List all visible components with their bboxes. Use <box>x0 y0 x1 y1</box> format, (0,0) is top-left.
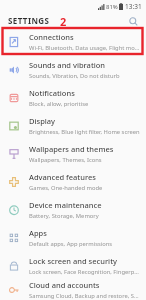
button[interactable]: Advanced features <box>0 168 146 196</box>
button[interactable]: Wallpapers and themes <box>0 140 146 168</box>
staticText: Advanced features <box>29 172 96 182</box>
button[interactable]: Cloud and accounts <box>0 280 146 300</box>
staticText: Connections <box>29 32 74 42</box>
staticText: Games, One-handed mode <box>29 184 103 192</box>
staticText: Sounds, Vibration, Do not disturb <box>29 72 120 80</box>
staticText: SETTINGS <box>8 15 50 26</box>
staticText: Default apps, App permissions <box>29 240 113 248</box>
staticText: Notifications <box>29 88 75 98</box>
staticText: 2 <box>60 14 67 29</box>
button[interactable]: Connections <box>0 28 146 56</box>
staticText: Cloud and accounts <box>29 280 100 290</box>
staticText: Device maintenance <box>29 200 102 210</box>
staticText: 13:31 <box>125 2 142 11</box>
button[interactable]: Display <box>0 112 146 140</box>
staticText: Wallpapers and themes <box>29 144 114 154</box>
staticText: Lock screen, Face Recognition, Fingerpri… <box>29 268 140 276</box>
staticText: Battery, Storage, Memory <box>29 212 99 220</box>
staticText: Wallpapers, Themes, Icons <box>29 156 102 164</box>
button[interactable]: Notifications <box>0 84 146 112</box>
staticText: 81% <box>106 3 118 11</box>
staticText: Wi-Fi, Bluetooth, Data usage, Flight mod… <box>29 44 140 52</box>
staticText: Sounds and vibration <box>29 60 106 70</box>
staticText: Display <box>29 116 56 126</box>
staticText: Block, allow, prioritise <box>29 100 89 108</box>
staticText: Apps <box>29 228 47 238</box>
staticText: Brightness, Blue light filter, Home scre… <box>29 128 140 136</box>
button[interactable]: Sounds and vibration <box>0 56 146 84</box>
button[interactable]: Search <box>126 14 140 28</box>
button[interactable]: Device maintenance <box>0 196 146 224</box>
button[interactable]: Lock screen and security <box>0 252 146 280</box>
staticText: Samsung Cloud, Backup and restore, Smart… <box>29 292 140 300</box>
staticText: Lock screen and security <box>29 256 117 266</box>
button[interactable]: Apps <box>0 224 146 252</box>
